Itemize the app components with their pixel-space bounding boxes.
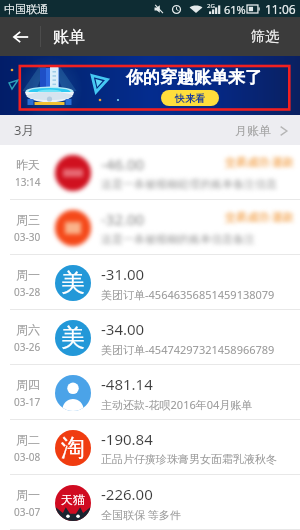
staticText: 03-26 <box>14 340 41 354</box>
button[interactable]: 周一 <box>0 475 300 530</box>
staticText: 美团订单-45474297321458966789 <box>101 342 275 357</box>
staticText: 周三 <box>16 212 40 227</box>
staticText: 淘 <box>61 433 85 463</box>
staticText: 2G <box>207 2 215 10</box>
staticText: 03-17 <box>14 395 41 409</box>
staticText: 筛选 <box>251 28 279 46</box>
staticText: 周六 <box>16 322 40 337</box>
staticText: -226.00 <box>101 484 153 504</box>
staticText: 交易成功·退款 <box>225 154 294 169</box>
staticText: 美团订单-45646356851459138079 <box>101 287 275 302</box>
staticText: 全国联保 等多件 <box>101 507 181 522</box>
staticText: 周二 <box>16 432 40 447</box>
staticText: 61% <box>224 2 246 17</box>
staticText: 3月 <box>14 121 35 139</box>
staticText: 交易成功·退款 <box>225 209 294 224</box>
button[interactable]: 周六 <box>0 310 300 365</box>
button[interactable]: 你的穿越账单来了 <box>0 56 300 115</box>
staticText: -32.00 <box>101 209 145 229</box>
staticText: 月账单 <box>235 123 271 138</box>
staticText: 周一 <box>16 267 40 282</box>
staticText: 03-07 <box>14 505 41 519</box>
staticText: 11:06 <box>265 1 296 17</box>
staticText: 这是一条被模糊处理的账单备注信息 <box>101 177 277 191</box>
button[interactable]: Back <box>0 17 41 56</box>
staticText: 美 <box>61 268 85 298</box>
button[interactable]: 周二 <box>0 420 300 475</box>
staticText: 中国联通 <box>4 2 48 16</box>
staticText: 周四 <box>16 377 40 392</box>
button[interactable]: 昨天 <box>0 145 300 200</box>
staticText: 这是一条被模糊的账单信息备注 <box>101 232 255 246</box>
staticText: 昨天 <box>16 157 40 172</box>
staticText: 快来看 <box>175 92 205 105</box>
staticText: -190.84 <box>101 429 153 449</box>
button[interactable]: 快来看 <box>161 90 219 106</box>
staticText: 正品片仔癀珍珠膏男女面霜乳液秋冬 <box>101 452 277 466</box>
staticText: 账单 <box>53 27 85 47</box>
staticText: -31.00 <box>101 264 145 284</box>
staticText: 周一 <box>16 487 40 502</box>
button[interactable]: 周四 <box>0 365 300 420</box>
staticText: 你的穿越账单来了 <box>126 67 262 88</box>
staticText: 03-08 <box>14 450 41 464</box>
staticText: -34.00 <box>101 319 145 339</box>
staticText: 03-28 <box>14 285 41 299</box>
staticText: -481.14 <box>101 374 153 394</box>
button[interactable]: 周三 <box>0 200 300 255</box>
staticText: 美 <box>61 323 85 353</box>
staticText: 天猫 <box>61 492 85 507</box>
staticText: -46.00 <box>101 154 145 174</box>
button[interactable]: 月账单 <box>235 123 300 138</box>
staticText: 03-30 <box>14 230 41 244</box>
button[interactable]: 周一 <box>0 255 300 310</box>
staticText: 13:14 <box>15 175 41 189</box>
staticText: 主动还款-花呗2016年04月账单 <box>101 397 253 412</box>
button[interactable]: 筛选 <box>230 17 300 56</box>
